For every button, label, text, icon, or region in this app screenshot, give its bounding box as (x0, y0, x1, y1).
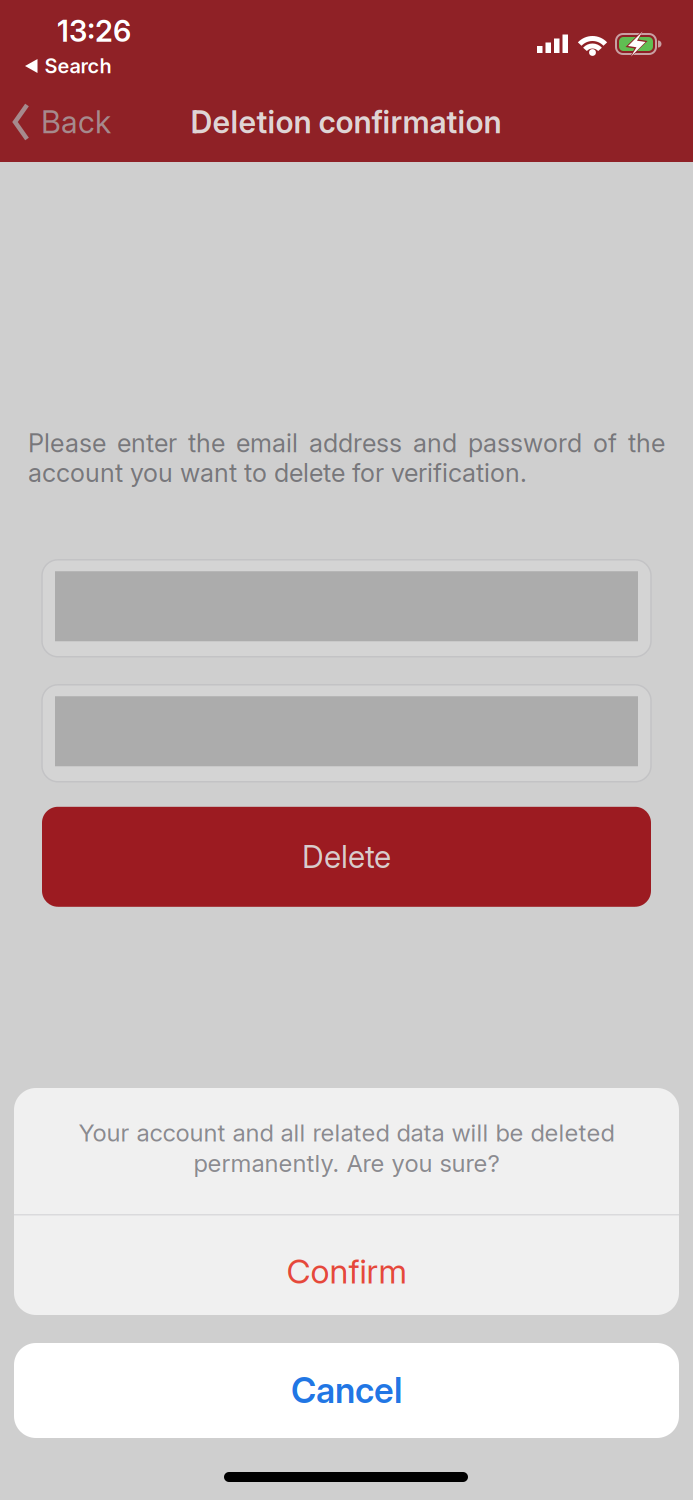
staticText: 13:26 (57, 14, 131, 48)
staticText: of (593, 428, 617, 458)
staticText: the (188, 428, 225, 458)
staticText: email (236, 428, 298, 458)
staticText: password (468, 428, 582, 458)
button[interactable]: Back (13, 103, 111, 141)
button[interactable]: Back to Search (24, 54, 111, 78)
staticText: Delete (302, 839, 391, 875)
staticText: Search (44, 54, 111, 78)
staticText: the (628, 428, 665, 458)
button[interactable]: Delete (42, 807, 651, 907)
staticText: Please (28, 428, 106, 458)
staticText: address (309, 428, 402, 458)
staticText: Deletion confirmation (190, 104, 501, 140)
staticText: enter (117, 428, 177, 458)
staticText: permanently. Are you sure? (193, 1149, 499, 1177)
staticText: Cancel (291, 1370, 402, 1411)
staticText: Your account and all related data will b… (78, 1119, 614, 1147)
staticText: Confirm (286, 1252, 406, 1291)
staticText: Back (41, 104, 111, 140)
button[interactable]: Confirm (14, 1215, 679, 1315)
staticText: and (413, 428, 457, 458)
staticText: account you want to delete for verificat… (28, 458, 527, 488)
button[interactable]: Cancel (14, 1343, 679, 1438)
button[interactable]: Email address (42, 560, 651, 657)
button[interactable]: Password (42, 685, 651, 782)
